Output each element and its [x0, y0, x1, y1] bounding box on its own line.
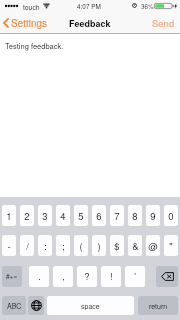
staticText: . [38, 270, 41, 283]
button[interactable]: Switch keyboard language [28, 296, 44, 315]
button[interactable]: ( [74, 235, 88, 256]
button[interactable]: & [128, 235, 142, 256]
button[interactable]: . [29, 266, 49, 287]
button[interactable]: 2 [20, 205, 34, 226]
button[interactable]: 9 [146, 205, 160, 226]
staticText: $ [114, 239, 120, 253]
staticText: 6 [96, 209, 102, 223]
staticText: ! [110, 270, 113, 283]
staticText: : [44, 239, 47, 253]
button[interactable]: 8 [128, 205, 142, 226]
button[interactable]: 3 [38, 205, 52, 226]
staticText: 4:07 PM [77, 2, 101, 11]
staticText: 4 [60, 209, 66, 223]
staticText: ? [84, 270, 90, 283]
staticText: Send [152, 16, 175, 30]
button[interactable]: ' [125, 266, 145, 287]
staticText: 7 [114, 209, 120, 223]
staticText: Feedback [69, 17, 111, 30]
button[interactable]: Send [151, 14, 176, 32]
staticText: 5 [78, 209, 84, 223]
staticText: ABC [7, 301, 22, 311]
button[interactable]: 4 [56, 205, 70, 226]
staticText: #+= [6, 272, 18, 281]
staticText: " [169, 239, 173, 253]
button[interactable]: : [38, 235, 52, 256]
staticText: 8 [132, 209, 138, 223]
staticText: return [149, 301, 168, 311]
button[interactable]: ; [56, 235, 70, 256]
staticText: 3 [42, 209, 48, 223]
staticText: space [81, 301, 100, 311]
staticText: 2 [24, 209, 30, 223]
staticText: @ [148, 239, 158, 253]
button[interactable]: Settings [2, 14, 49, 32]
staticText: Settings [11, 16, 48, 30]
staticText: touch [23, 2, 40, 12]
staticText: 9 [150, 209, 156, 223]
staticText: / [26, 239, 29, 253]
staticText: ( [79, 239, 83, 253]
staticText: - [7, 239, 11, 253]
button[interactable]: , [53, 266, 73, 287]
button[interactable]: ) [92, 235, 106, 256]
button[interactable]: 6 [92, 205, 106, 226]
button[interactable]: 7 [110, 205, 124, 226]
staticText: ) [97, 239, 101, 253]
button[interactable]: - [2, 235, 16, 256]
button[interactable]: 0 [164, 205, 178, 226]
staticText: 0 [168, 209, 174, 223]
staticText: ; [62, 239, 65, 253]
button[interactable]: $ [110, 235, 124, 256]
button[interactable]: 5 [74, 205, 88, 226]
staticText: & [132, 239, 139, 253]
button[interactable]: ABC [2, 296, 26, 315]
button[interactable]: #+= [2, 266, 22, 287]
staticText: 36% [141, 2, 154, 11]
button[interactable]: ! [101, 266, 121, 287]
button[interactable]: ? [77, 266, 97, 287]
button[interactable]: return [138, 296, 178, 315]
button[interactable]: @ [146, 235, 160, 256]
button[interactable]: space [47, 296, 134, 315]
staticText: 1 [6, 209, 12, 223]
staticText: , [62, 270, 65, 283]
button[interactable]: / [20, 235, 34, 256]
button[interactable]: " [164, 235, 178, 256]
button[interactable]: 1 [2, 205, 16, 226]
button[interactable]: Backspace [156, 266, 178, 287]
staticText: ' [134, 270, 136, 283]
staticText: Testing feedback. [5, 40, 64, 51]
